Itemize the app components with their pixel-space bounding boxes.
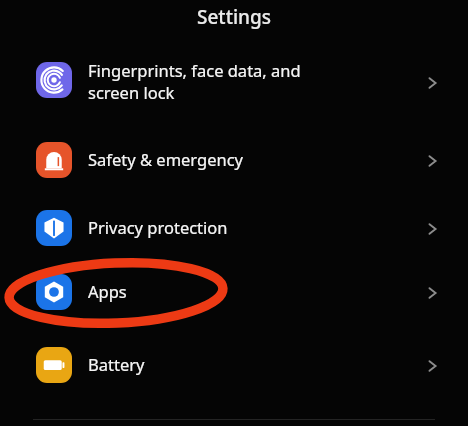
other: Open Apps: [423, 284, 441, 302]
staticText: screen lock: [88, 81, 175, 103]
other: Open Privacy protection: [423, 220, 441, 238]
staticText: Settings: [197, 4, 271, 30]
staticText: Fingerprints, face data, and: [88, 59, 301, 81]
button[interactable]: Privacy protection: [0, 207, 468, 251]
button[interactable]: Battery: [0, 344, 468, 388]
staticText: Battery: [88, 353, 145, 375]
staticText: Safety & emergency: [88, 148, 244, 170]
other: Open Safety & emergency: [423, 152, 441, 170]
button[interactable]: Fingerprints, face data, and: [0, 57, 468, 109]
staticText: Apps: [88, 280, 127, 302]
button[interactable]: Apps: [0, 271, 468, 315]
staticText: Privacy protection: [88, 216, 228, 238]
button[interactable]: Safety & emergency: [0, 139, 468, 183]
other: Open Battery: [423, 357, 441, 375]
other: Open Fingerprints, face data, and screen…: [423, 74, 441, 92]
